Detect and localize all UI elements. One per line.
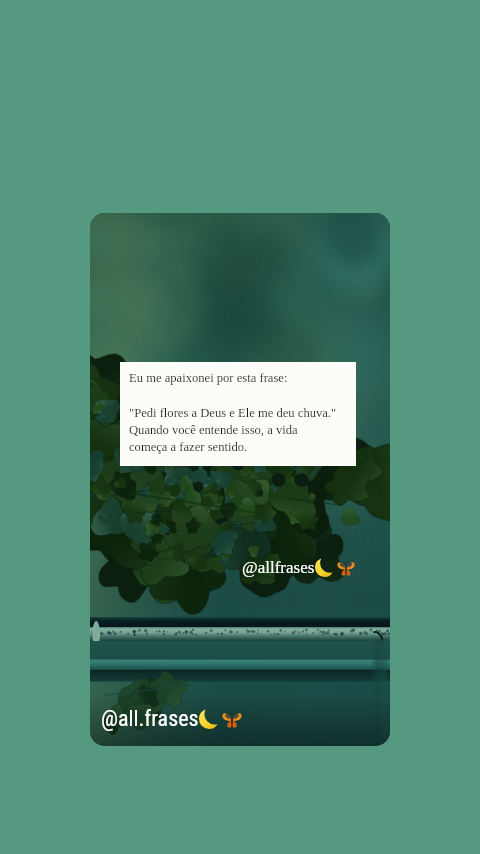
staticText: @all.frases (101, 706, 199, 732)
button[interactable]: Eu me apaixonei por esta frase: (90, 213, 390, 746)
staticText: "Pedi flores a Deus e Ele me deu chuva."… (129, 406, 337, 454)
staticText: @allfrases (242, 558, 315, 577)
staticText: Eu me apaixonei por esta frase: (129, 371, 288, 385)
